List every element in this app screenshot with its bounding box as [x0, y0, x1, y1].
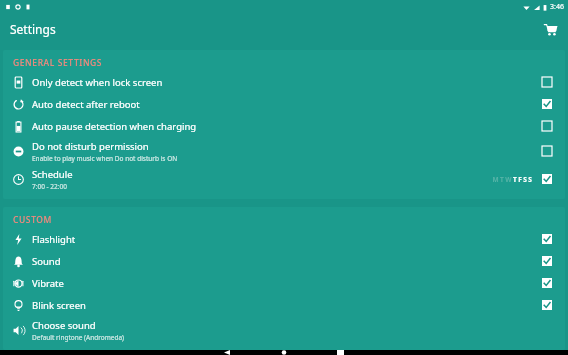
staticText: T [513, 175, 517, 184]
button[interactable]: Back [214, 350, 242, 355]
button[interactable]: Auto detect after reboot [3, 93, 565, 115]
staticText: Do not disturb permission [32, 140, 149, 153]
staticText: CUSTOM [13, 214, 53, 226]
button[interactable]: Blink screen [3, 294, 565, 316]
button[interactable]: Auto pause detection when charging [3, 115, 565, 137]
staticText: Choose sound [32, 319, 96, 332]
button[interactable]: Vibrate [537, 273, 557, 293]
staticText: 7:00 - 22:00 [32, 182, 67, 191]
button[interactable]: Sound [3, 250, 565, 272]
button[interactable]: Auto pause detection when charging [537, 116, 557, 136]
staticText: Auto detect after reboot [32, 98, 140, 111]
staticText: S [528, 175, 532, 184]
button[interactable]: Sound [537, 251, 557, 271]
button[interactable]: Schedule [537, 169, 557, 189]
staticText: F [518, 175, 522, 184]
staticText: T [500, 175, 504, 184]
button[interactable]: Recents [326, 350, 354, 355]
button[interactable]: Do not disturb permission [537, 141, 557, 161]
button[interactable]: Home [270, 350, 298, 355]
button[interactable]: Blink screen [537, 295, 557, 315]
button[interactable]: Schedule [3, 165, 565, 193]
button[interactable]: Flashlight [537, 229, 557, 249]
button[interactable]: Shop [538, 17, 562, 41]
button[interactable]: Auto detect after reboot [537, 94, 557, 114]
button[interactable]: Choose sound [3, 316, 565, 344]
staticText: M [492, 175, 499, 184]
staticText: S [523, 175, 527, 184]
staticText: Flashlight [32, 233, 76, 246]
staticText: Enable to play music when Do not disturb… [32, 154, 178, 163]
staticText: Blink screen [32, 299, 86, 312]
staticText: W [505, 175, 512, 184]
button[interactable]: Only detect when lock screen [537, 72, 557, 92]
button[interactable]: Do not disturb permission [3, 137, 565, 165]
button[interactable]: Flashlight [3, 228, 565, 250]
staticText: Only detect when lock screen [32, 76, 163, 89]
staticText: Schedule [32, 168, 73, 181]
staticText: Sound [32, 255, 61, 268]
staticText: 3:46 [550, 2, 564, 12]
staticText: Settings [10, 21, 56, 37]
button[interactable]: Vibrate [3, 272, 565, 294]
staticText: Default ringtone (Andromeda) [32, 333, 124, 342]
staticText: Vibrate [32, 277, 64, 290]
staticText: Auto pause detection when charging [32, 120, 197, 133]
staticText: GENERAL SETTINGS [13, 57, 103, 69]
button[interactable]: Only detect when lock screen [3, 71, 565, 93]
